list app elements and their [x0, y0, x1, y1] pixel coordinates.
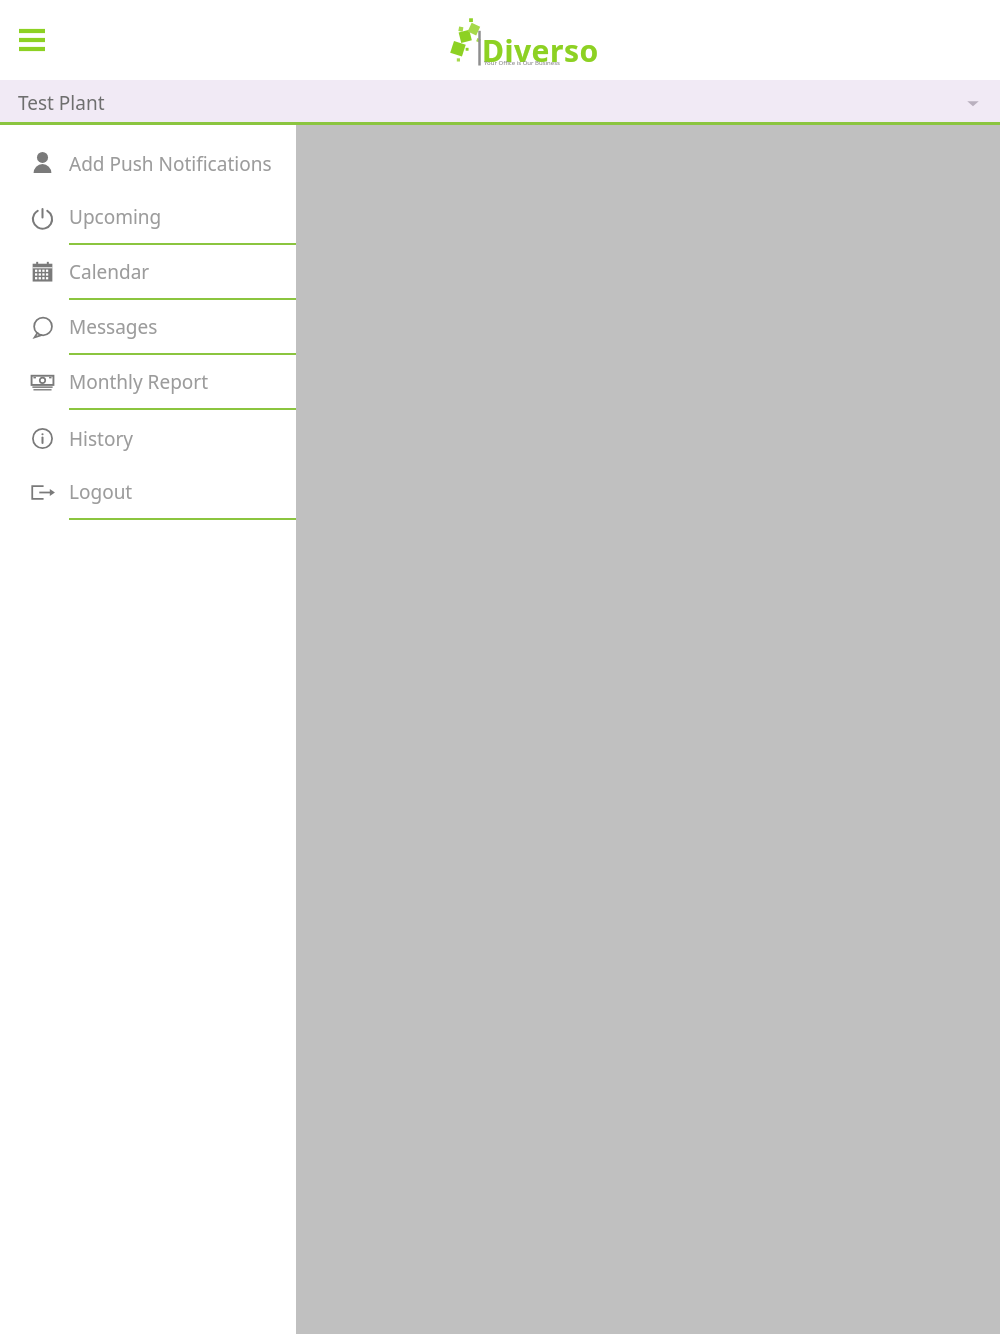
staticText: Monthly Report: [69, 369, 209, 395]
staticText: Diverso: [482, 30, 599, 71]
button[interactable]: Test Plant: [0, 80, 1000, 125]
button[interactable]: Logout: [0, 466, 296, 521]
button[interactable]: Add Push Notifications: [0, 136, 296, 191]
button[interactable]: Open navigation menu: [10, 18, 54, 62]
button[interactable]: Calendar: [0, 246, 296, 301]
staticText: Test Plant: [18, 90, 105, 116]
button[interactable]: History: [0, 411, 296, 466]
staticText: History: [69, 426, 133, 452]
staticText: Logout: [69, 479, 133, 505]
button[interactable]: Monthly Report: [0, 356, 296, 411]
staticText: Messages: [69, 314, 158, 340]
staticText: Your Office is Our Business: [484, 59, 560, 67]
button[interactable]: Messages: [0, 301, 296, 356]
staticText: Calendar: [69, 259, 150, 285]
button[interactable]: Upcoming: [0, 191, 296, 246]
staticText: Upcoming: [69, 204, 162, 230]
staticText: Add Push Notifications: [69, 151, 272, 177]
